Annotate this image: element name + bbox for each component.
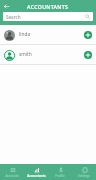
staticText: Profile [55, 174, 65, 178]
button[interactable]: Accountants [24, 164, 48, 180]
staticText: linda [19, 31, 31, 38]
staticText: Accounts [5, 174, 19, 178]
button[interactable]: Profile [48, 164, 72, 180]
button[interactable]: linda [0, 25, 96, 44]
button[interactable]: Back [0, 0, 12, 12]
staticText: ACCOUNTANTS [27, 3, 69, 10]
staticText: Accountants [27, 174, 46, 178]
button[interactable]: Settings [72, 164, 96, 180]
staticText: Search [6, 14, 21, 20]
staticText: Settings [78, 174, 90, 178]
button[interactable]: Add smith [82, 49, 93, 60]
button[interactable]: Accounts [0, 164, 24, 180]
button[interactable]: smith [0, 45, 96, 64]
button[interactable]: Search [3, 12, 93, 21]
staticText: smith [19, 51, 32, 58]
button[interactable]: Add linda [82, 29, 93, 40]
other: Search [84, 13, 91, 20]
